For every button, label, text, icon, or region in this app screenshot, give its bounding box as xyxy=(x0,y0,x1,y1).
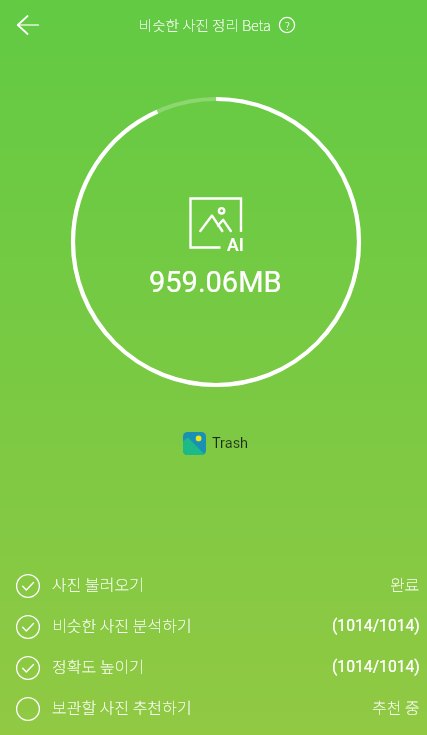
staticText: Trash xyxy=(212,435,249,452)
staticText: 추천 중 xyxy=(372,695,420,718)
staticText: ? xyxy=(285,17,290,33)
button[interactable]: 비슷한 사진 분석하기 xyxy=(0,606,427,647)
staticText: 보관할 사진 추천하기 xyxy=(52,695,192,718)
button[interactable]: Back xyxy=(8,9,40,41)
button[interactable]: 정확도 높이기 xyxy=(0,647,427,688)
staticText: (1014/1014) xyxy=(332,616,420,634)
staticText: 완료 xyxy=(390,572,420,595)
staticText: 비슷한 사진 분석하기 xyxy=(52,613,192,636)
staticText: 정확도 높이기 xyxy=(52,654,144,677)
button[interactable]: Trash xyxy=(183,432,249,455)
staticText: 959.06MB xyxy=(149,265,282,299)
staticText: (1014/1014) xyxy=(332,657,420,675)
staticText: AI xyxy=(227,235,244,256)
staticText: 비슷한 사진 정리 Beta xyxy=(139,14,271,35)
button[interactable]: 사진 불러오기 xyxy=(0,565,427,606)
staticText: 사진 불러오기 xyxy=(52,572,144,595)
button[interactable]: Help xyxy=(278,16,296,34)
button[interactable]: 보관할 사진 추천하기 xyxy=(0,688,427,729)
